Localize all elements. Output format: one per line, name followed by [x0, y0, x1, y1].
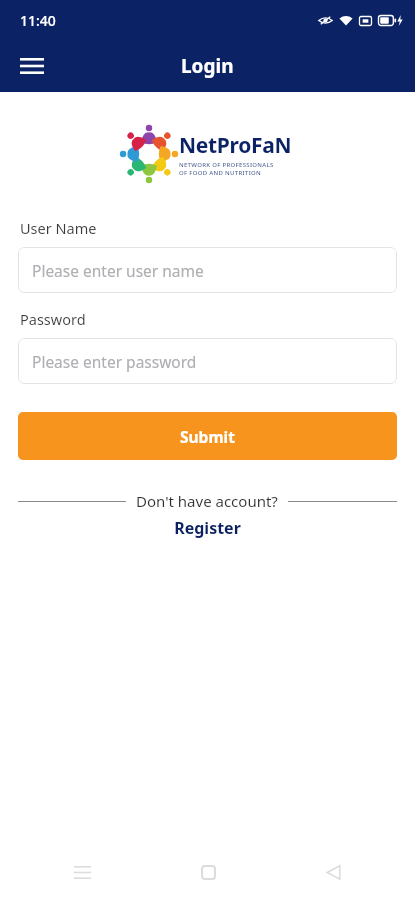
button[interactable]: Back [311, 850, 355, 894]
button[interactable]: Home [186, 850, 230, 894]
staticText: Submit [180, 426, 235, 447]
staticText: Login [181, 53, 234, 79]
button[interactable]: Register [0, 517, 415, 539]
staticText: 11:40 [20, 11, 56, 30]
button[interactable]: Open navigation menu [12, 46, 52, 86]
button[interactable]: Please enter user name [18, 247, 397, 293]
staticText: Register [174, 517, 241, 539]
staticText: Password [20, 309, 86, 329]
button[interactable]: Recent apps [60, 850, 104, 894]
staticText: OF FOOD AND NUTRITION [179, 169, 262, 177]
staticText: User Name [20, 218, 97, 238]
staticText: Please enter password [32, 351, 197, 372]
button[interactable]: Submit [18, 412, 397, 460]
staticText: NETWORK OF PROFESSIONALS [179, 161, 274, 169]
button[interactable]: Please enter password [18, 338, 397, 384]
staticText: NetProFaN [179, 131, 292, 160]
staticText: Don't have account? [136, 491, 278, 511]
staticText: Please enter user name [32, 260, 204, 281]
